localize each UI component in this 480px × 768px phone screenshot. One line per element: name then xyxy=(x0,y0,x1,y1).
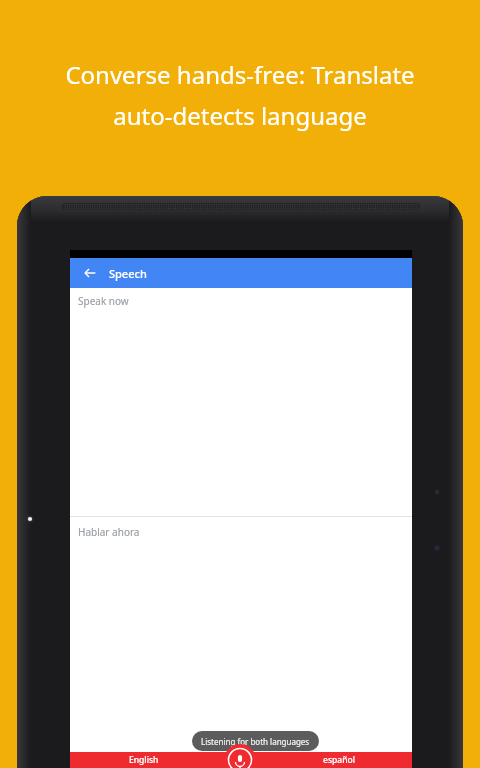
staticText: Hablar ahora xyxy=(78,525,140,539)
button[interactable]: Hablar ahora xyxy=(70,517,412,752)
staticText: auto-detects language xyxy=(113,99,367,132)
button[interactable]: English xyxy=(70,752,217,768)
button[interactable]: Speak now xyxy=(70,288,412,516)
button[interactable]: Back xyxy=(70,258,412,288)
staticText: Speak now xyxy=(78,294,129,308)
staticText: English xyxy=(129,754,159,766)
button[interactable]: Back xyxy=(81,264,99,282)
staticText: Converse hands-free: Translate xyxy=(65,58,415,91)
staticText: Speech xyxy=(109,266,147,281)
staticText: español xyxy=(323,754,355,766)
staticText: Listening for both languages xyxy=(201,736,310,747)
button[interactable]: español xyxy=(265,752,412,768)
button[interactable]: Microphone xyxy=(224,744,256,768)
